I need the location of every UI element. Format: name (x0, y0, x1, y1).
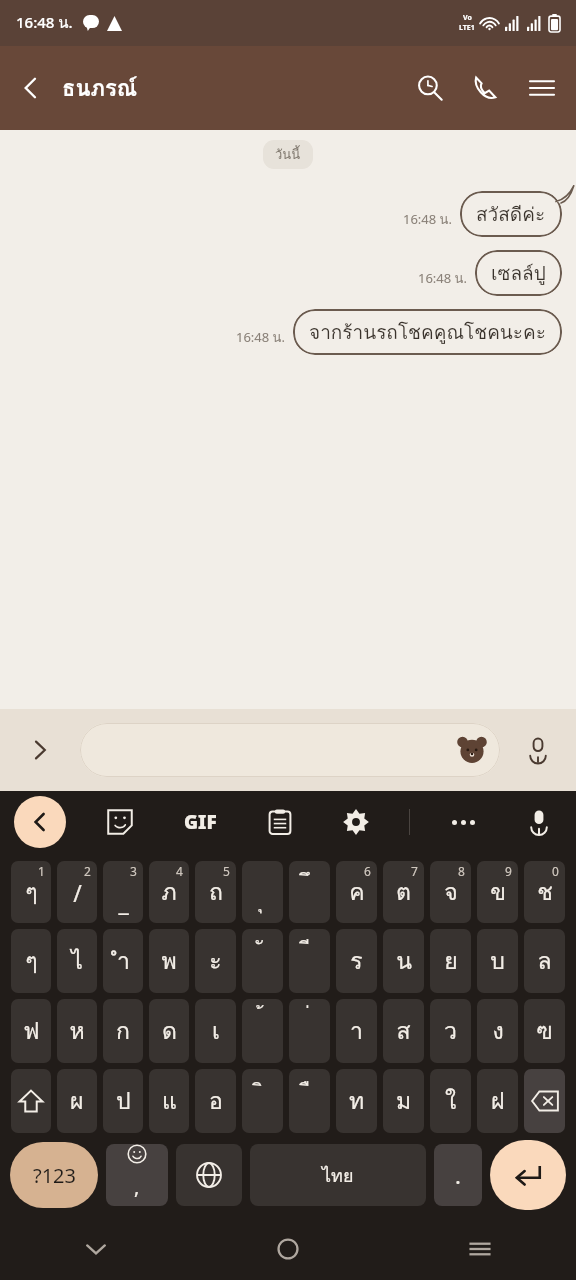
button[interactable]: 8 (430, 861, 471, 923)
button[interactable]: Hide keyboard (0, 1218, 192, 1280)
button[interactable]: ฝ (477, 1069, 518, 1133)
button[interactable]: 4 (149, 861, 189, 923)
button[interactable]: ั (242, 929, 283, 993)
staticText: / (73, 877, 82, 908)
button[interactable]: Voice message (500, 709, 576, 791)
button[interactable]: ไ (57, 929, 97, 993)
button[interactable]: ะ (195, 929, 236, 993)
button[interactable]: Emoji (106, 1144, 168, 1206)
button[interactable]: จากร้านรถโชคคูณโชคนะคะ (293, 309, 562, 355)
staticText: ไ (71, 943, 83, 980)
staticText: 4 (176, 863, 183, 879)
staticText: ค (349, 874, 365, 911)
button[interactable]: ก (103, 999, 143, 1063)
button[interactable]: น (383, 929, 424, 993)
button[interactable]: เ (195, 999, 236, 1063)
button[interactable]: Backspace (524, 1069, 565, 1133)
staticText: 1 (38, 863, 45, 879)
button[interactable]: ผ (57, 1069, 97, 1133)
staticText: ถ (209, 874, 223, 911)
button[interactable]: ึ (289, 861, 330, 923)
staticText: ใ (445, 1083, 457, 1120)
button[interactable]: 3 (103, 861, 143, 923)
button[interactable]: อ (195, 1069, 236, 1133)
button[interactable]: ห (57, 999, 97, 1063)
staticText: ผ (70, 1083, 84, 1120)
button[interactable]: พ (149, 929, 189, 993)
button[interactable]: Sticker (454, 732, 490, 768)
button[interactable]: ง (477, 999, 518, 1063)
button[interactable]: ใ (430, 1069, 471, 1133)
button[interactable]: เซลล์ปู (475, 250, 562, 296)
button[interactable]: 2 (57, 861, 97, 923)
button[interactable]: GIF (174, 796, 226, 848)
button[interactable]: ส (383, 999, 424, 1063)
button[interactable]: ป (103, 1069, 143, 1133)
button[interactable]: บ (477, 929, 518, 993)
staticText: Vo (463, 13, 472, 23)
button[interactable]: ว (430, 999, 471, 1063)
button[interactable]: Voice input (516, 799, 562, 845)
staticText: 2 (84, 863, 91, 879)
button[interactable]: ิ (242, 1069, 283, 1133)
button[interactable]: ื (289, 1069, 330, 1133)
button[interactable]: แ (149, 1069, 189, 1133)
button[interactable]: 9 (477, 861, 518, 923)
button[interactable]: Clipboard (257, 799, 303, 845)
staticText: GIF (184, 809, 217, 835)
button[interactable]: ล (524, 929, 565, 993)
button[interactable]: Settings (333, 799, 379, 845)
button[interactable]: Call (458, 60, 514, 116)
button[interactable]: More options (0, 709, 80, 791)
button[interactable]: ?123 (10, 1142, 98, 1208)
staticText: แ (162, 1083, 177, 1120)
button[interactable]: Shift (11, 1069, 51, 1133)
button[interactable]: ม (383, 1069, 424, 1133)
staticText: ?123 (33, 1162, 76, 1189)
button[interactable]: 7 (383, 861, 424, 923)
button[interactable]: ฃ (524, 999, 565, 1063)
staticText: 16:48 น. (236, 327, 285, 348)
staticText: ะ (209, 943, 222, 980)
staticText: 9 (505, 863, 512, 879)
staticText: 3 (130, 863, 137, 879)
staticText: ห (69, 1013, 85, 1050)
button[interactable]: Change language (176, 1144, 242, 1206)
button[interactable]: ด (149, 999, 189, 1063)
button[interactable]: ร (336, 929, 377, 993)
button[interactable]: 6 (336, 861, 377, 923)
button[interactable]: Sticker (80, 723, 500, 777)
button[interactable]: Search (402, 60, 458, 116)
button[interactable]: Collapse toolbar (14, 796, 66, 848)
button[interactable]: . (434, 1144, 482, 1206)
button[interactable]: ้ (242, 999, 283, 1063)
staticText: ส (396, 1013, 411, 1050)
staticText: ำ (117, 943, 130, 980)
staticText: ๆ (25, 943, 38, 980)
staticText: สวัสดีค่ะ (476, 199, 546, 229)
staticText: ว (444, 1013, 457, 1050)
button[interactable]: ท (336, 1069, 377, 1133)
button[interactable]: More (440, 799, 486, 845)
staticText: 16:48 น. (403, 209, 452, 230)
button[interactable]: ย (430, 929, 471, 993)
staticText: า (350, 1013, 363, 1050)
button[interactable]: สวัสดีค่ะ (460, 191, 562, 237)
button[interactable]: Back (0, 46, 62, 130)
button[interactable]: Recent apps (384, 1218, 576, 1280)
button[interactable]: ี (289, 929, 330, 993)
button[interactable]: Enter (490, 1140, 566, 1210)
button[interactable]: า (336, 999, 377, 1063)
button[interactable]: ่ (289, 999, 330, 1063)
button[interactable]: ุ (242, 861, 283, 923)
button[interactable]: 1 (11, 861, 51, 923)
button[interactable]: 0 (524, 861, 565, 923)
button[interactable]: Home (192, 1218, 384, 1280)
button[interactable]: ฟ (11, 999, 51, 1063)
button[interactable]: Stickers (97, 799, 143, 845)
button[interactable]: ๆ (11, 929, 51, 993)
button[interactable]: ำ (103, 929, 143, 993)
button[interactable]: Menu (514, 60, 570, 116)
button[interactable]: ไทย (250, 1144, 426, 1206)
button[interactable]: 5 (195, 861, 236, 923)
